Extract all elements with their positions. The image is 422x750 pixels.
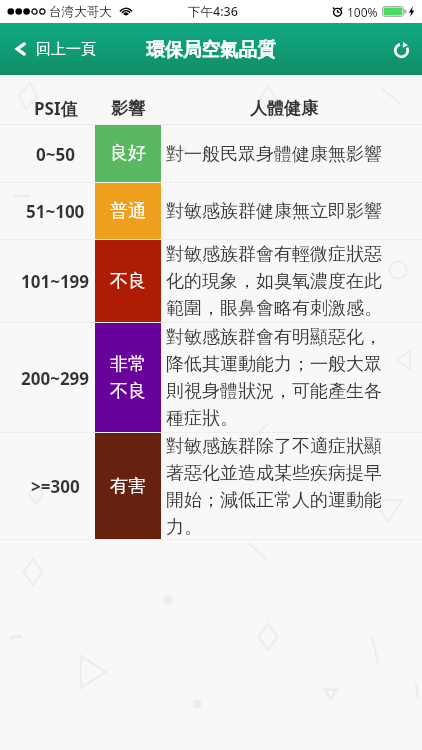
staticText: 台湾大哥大 <box>49 4 112 20</box>
staticText: 0~50 <box>36 143 75 166</box>
staticText: 對敏感族群會有輕微症狀惡 化的現象，如臭氧濃度在此 範圍，眼鼻會略有刺激感。 <box>166 243 382 320</box>
staticText: 不良 <box>110 270 146 293</box>
staticText: 普通 <box>110 200 146 223</box>
button[interactable]: 101~199 <box>0 240 422 323</box>
button[interactable]: 0~50 <box>0 125 422 183</box>
button[interactable]: Refresh <box>380 23 422 75</box>
staticText: 環保局空氣品質 <box>146 38 276 61</box>
staticText: 有害 <box>110 475 146 498</box>
staticText: 回上一頁 <box>36 40 96 59</box>
staticText: 200~299 <box>21 367 90 390</box>
button[interactable]: 回上一頁 <box>0 23 107 75</box>
staticText: 100% <box>347 4 378 20</box>
staticText: 對敏感族群健康無立即影響 <box>166 200 382 223</box>
staticText: >=300 <box>31 475 80 498</box>
staticText: 非常 不良 <box>110 353 146 403</box>
staticText: PSI值 <box>34 97 78 120</box>
staticText: 101~199 <box>21 270 90 293</box>
staticText: 人體健康 <box>250 98 318 119</box>
staticText: 下午4:36 <box>188 3 238 20</box>
staticText: 51~100 <box>26 200 85 223</box>
staticText: 影響 <box>111 98 145 119</box>
button[interactable]: 200~299 <box>0 323 422 433</box>
staticText: 良好 <box>110 142 146 165</box>
button[interactable]: >=300 <box>0 433 422 540</box>
staticText: 對敏感族群除了不適症狀顯 著惡化並造成某些疾病提早 開始；減低正常人的運動能 力… <box>166 435 382 539</box>
staticText: 對一般民眾身體健康無影響 <box>166 143 382 166</box>
staticText: 對敏感族群會有明顯惡化， 降低其運動能力；一般大眾 則視身體狀況，可能產生各 種… <box>166 326 382 430</box>
button[interactable]: 51~100 <box>0 183 422 240</box>
